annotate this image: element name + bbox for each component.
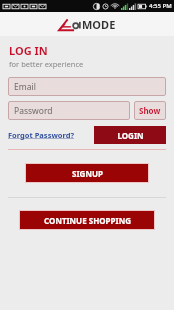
button[interactable]: LOGIN bbox=[94, 126, 166, 144]
staticText: 4:55 PM bbox=[149, 2, 172, 10]
button[interactable]: SIGNUP bbox=[25, 163, 149, 183]
staticText: CONTINUE SHOPPING bbox=[44, 215, 131, 226]
staticText: Forgot Password? bbox=[8, 130, 75, 140]
other: LA Mode logo bbox=[58, 18, 81, 31]
staticText: LOGIN bbox=[117, 130, 144, 141]
button[interactable]: Email bbox=[8, 77, 166, 96]
staticText: Show bbox=[139, 105, 161, 116]
staticText: LOG IN bbox=[9, 43, 48, 58]
button[interactable]: Show bbox=[134, 101, 166, 120]
staticText: for better experience bbox=[9, 59, 84, 69]
button[interactable]: Forgot Password? bbox=[8, 127, 75, 143]
staticText: Email bbox=[14, 81, 36, 93]
button[interactable]: Password bbox=[8, 101, 130, 120]
staticText: MODE bbox=[82, 17, 116, 32]
staticText: SIGNUP bbox=[72, 168, 103, 179]
button[interactable]: CONTINUE SHOPPING bbox=[19, 210, 155, 230]
staticText: Password bbox=[14, 105, 53, 117]
